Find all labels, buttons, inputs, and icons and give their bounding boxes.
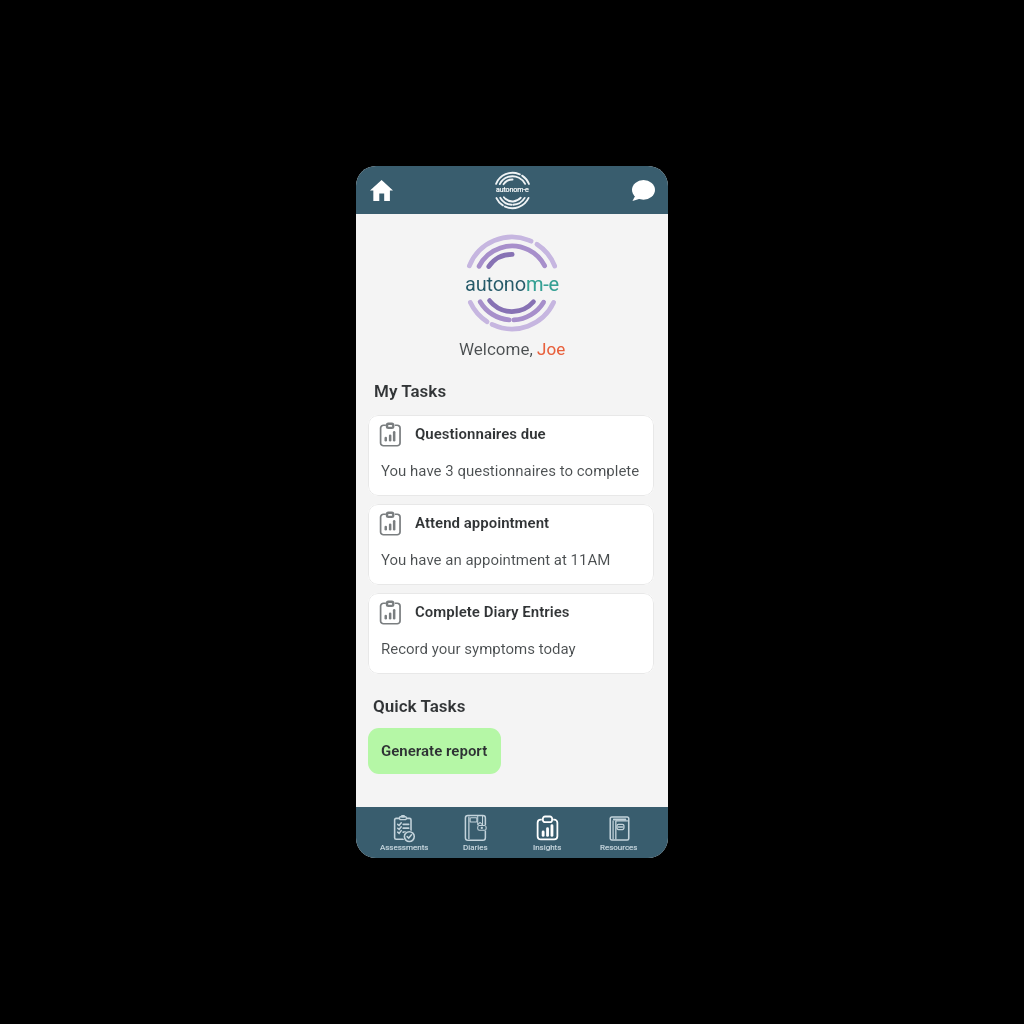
- staticText: You have 3 questionnaires to complete: [381, 462, 640, 480]
- staticText: Questionnaires due: [415, 425, 546, 443]
- staticText: Welcome, Joe: [459, 339, 566, 359]
- staticText: Complete Diary Entries: [415, 603, 570, 621]
- staticText: Attend appointment: [415, 514, 550, 532]
- staticText: Record your symptoms today: [381, 640, 576, 658]
- button[interactable]: Attend appointment: [368, 504, 654, 585]
- staticText: Quick Tasks: [373, 696, 466, 716]
- button[interactable]: Resources: [583, 807, 655, 858]
- staticText: You have an appointment at 11AM: [381, 551, 611, 569]
- staticText: autonom-e: [496, 186, 529, 194]
- button[interactable]: Assessments: [369, 807, 440, 858]
- button[interactable]: Messages: [625, 172, 661, 208]
- staticText: Assessments: [380, 843, 429, 852]
- button[interactable]: Generate report: [368, 728, 501, 774]
- button[interactable]: Diaries: [440, 807, 511, 858]
- button[interactable]: Insights: [511, 807, 583, 858]
- staticText: Generate report: [381, 742, 488, 760]
- staticText: autonom-e: [465, 272, 559, 295]
- button[interactable]: Questionnaires due: [368, 415, 654, 496]
- button[interactable]: Complete Diary Entries: [368, 593, 654, 674]
- staticText: Resources: [600, 843, 638, 852]
- staticText: Insights: [533, 843, 562, 852]
- staticText: My Tasks: [374, 381, 447, 401]
- button[interactable]: Home: [363, 172, 399, 208]
- staticText: Diaries: [463, 843, 488, 852]
